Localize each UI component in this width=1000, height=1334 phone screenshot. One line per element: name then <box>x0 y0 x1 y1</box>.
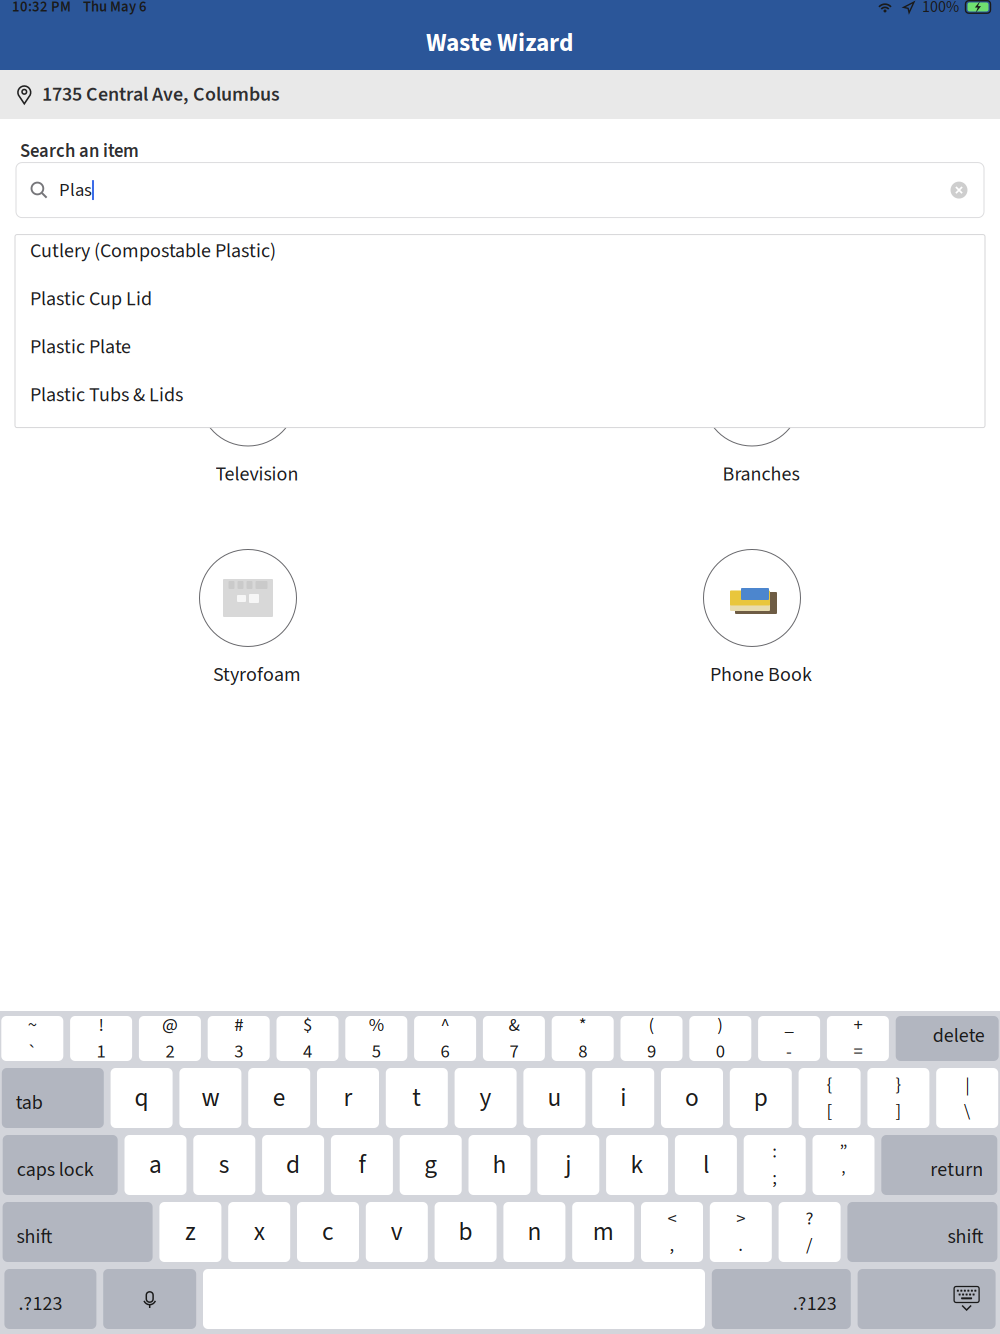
button[interactable] <box>118 349 378 488</box>
staticText: t <box>412 1080 421 1116</box>
staticText: caps lock <box>17 1155 94 1184</box>
staticText: h <box>492 1147 506 1183</box>
staticText: / <box>806 1232 813 1259</box>
button[interactable]: k <box>606 1135 668 1195</box>
button[interactable]: v <box>366 1202 428 1262</box>
button[interactable]: a <box>124 1135 186 1195</box>
button[interactable]: z <box>159 1202 221 1262</box>
staticText: e <box>273 1080 286 1116</box>
button[interactable]: .?123 <box>4 1269 96 1329</box>
button[interactable]: w <box>179 1068 241 1128</box>
button[interactable]: i <box>592 1068 654 1128</box>
button[interactable]: s <box>193 1135 255 1195</box>
button[interactable]: @ <box>139 1016 201 1061</box>
staticText: ~ <box>28 1012 37 1038</box>
staticText: = <box>853 1038 862 1065</box>
button[interactable]: p <box>730 1068 792 1128</box>
button[interactable]: caps lock <box>3 1135 118 1195</box>
button[interactable]: % <box>345 1016 407 1061</box>
button[interactable]: tab <box>2 1068 104 1128</box>
button[interactable]: Clear search text <box>946 177 972 203</box>
button[interactable]: j <box>537 1135 599 1195</box>
staticText: # <box>234 1012 243 1038</box>
staticText: ( <box>648 1012 654 1038</box>
staticText: l <box>703 1147 709 1183</box>
staticText: delete <box>933 1021 985 1050</box>
button[interactable]: y <box>455 1068 517 1128</box>
button[interactable]: ” <box>812 1135 874 1195</box>
button[interactable]: return <box>881 1135 997 1195</box>
staticText: ! <box>99 1012 104 1038</box>
staticText: Plas <box>59 177 92 203</box>
button[interactable]: Styrofoam <box>118 549 378 689</box>
button[interactable]: Dictate <box>103 1269 196 1329</box>
button[interactable]: Plastic Cup Lid <box>15 283 985 331</box>
staticText: 9 <box>647 1038 656 1065</box>
button[interactable]: d <box>262 1135 324 1195</box>
button[interactable]: _ <box>758 1016 820 1061</box>
staticText: a <box>149 1147 162 1183</box>
button[interactable]: e <box>248 1068 310 1128</box>
button[interactable]: Cutlery (Compostable Plastic) <box>15 235 985 283</box>
button[interactable]: 1735 Central Ave, Columbus <box>0 70 1000 119</box>
staticText: q <box>135 1080 149 1116</box>
staticText: 3 <box>234 1038 243 1065</box>
button[interactable]: g <box>400 1135 462 1195</box>
button[interactable]: < <box>641 1202 703 1262</box>
button[interactable]: r <box>317 1068 379 1128</box>
staticText: Phone Book <box>710 660 812 689</box>
button[interactable]: l <box>675 1135 737 1195</box>
staticText: j <box>565 1147 571 1183</box>
button[interactable]: ) <box>689 1016 751 1061</box>
button[interactable]: shift <box>847 1202 997 1262</box>
button[interactable]: } <box>867 1068 929 1128</box>
button[interactable]: : <box>744 1135 806 1195</box>
staticText: g <box>424 1147 437 1183</box>
button[interactable]: & <box>483 1016 545 1061</box>
button[interactable]: n <box>503 1202 565 1262</box>
button[interactable]: # <box>208 1016 270 1061</box>
button[interactable]: ? <box>779 1202 841 1262</box>
button[interactable]: | <box>936 1068 998 1128</box>
button[interactable]: ~ <box>1 1016 63 1061</box>
button[interactable]: + <box>827 1016 889 1061</box>
button[interactable]: ^ <box>414 1016 476 1061</box>
button[interactable]: Plastic Tubs & Lids <box>15 379 985 427</box>
staticText: _ <box>785 1012 794 1038</box>
staticText: 1 <box>97 1038 106 1065</box>
staticText: n <box>527 1214 541 1250</box>
button[interactable]: m <box>572 1202 634 1262</box>
button[interactable] <box>622 349 882 488</box>
staticText: z <box>185 1214 196 1250</box>
button[interactable]: { <box>799 1068 861 1128</box>
button[interactable]: Hide keyboard <box>858 1269 996 1329</box>
staticText: ? <box>806 1205 814 1232</box>
button[interactable]: > <box>710 1202 772 1262</box>
button[interactable]: * <box>552 1016 614 1061</box>
staticText: < <box>667 1205 676 1232</box>
staticText: * <box>579 1012 587 1038</box>
button[interactable]: $ <box>276 1016 338 1061</box>
button[interactable]: Plastic Plate <box>15 331 985 379</box>
staticText: : <box>772 1138 777 1165</box>
staticText: ^ <box>441 1012 450 1038</box>
button[interactable]: x <box>228 1202 290 1262</box>
button[interactable]: b <box>435 1202 497 1262</box>
button[interactable]: delete <box>896 1016 999 1061</box>
button[interactable]: t <box>386 1068 448 1128</box>
staticText: } <box>895 1071 901 1098</box>
button[interactable]: q <box>111 1068 173 1128</box>
button[interactable]: ( <box>620 1016 682 1061</box>
button[interactable]: o <box>661 1068 723 1128</box>
button[interactable]: ! <box>70 1016 132 1061</box>
button[interactable]: f <box>331 1135 393 1195</box>
button[interactable]: c <box>297 1202 359 1262</box>
button[interactable]: h <box>468 1135 530 1195</box>
button[interactable]: shift <box>3 1202 153 1262</box>
button[interactable]: u <box>523 1068 585 1128</box>
button[interactable]: Phone Book <box>622 549 882 689</box>
staticText: | <box>965 1071 969 1098</box>
button[interactable]: .?123 <box>712 1269 851 1329</box>
staticText: r <box>343 1080 352 1116</box>
